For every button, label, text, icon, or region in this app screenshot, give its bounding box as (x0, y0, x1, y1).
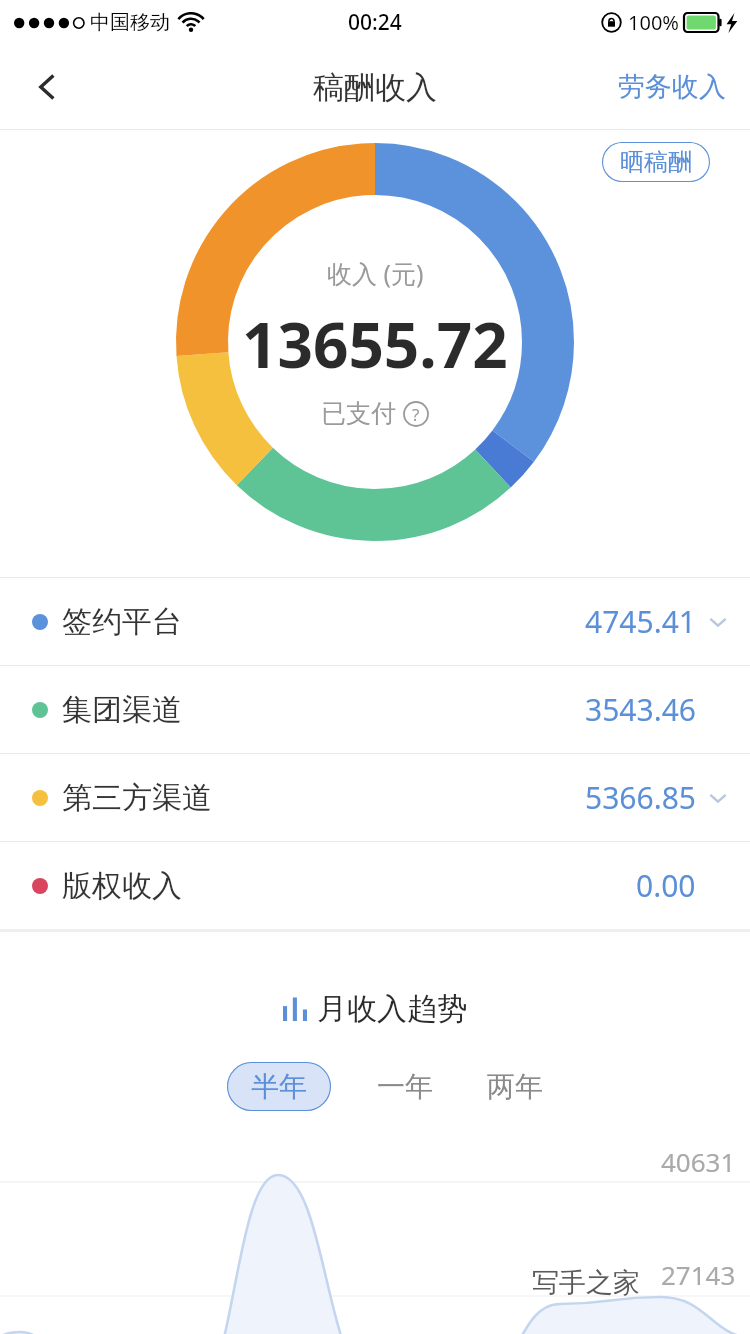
button[interactable]: 第三方渠道 (0, 754, 750, 841)
staticText: 已支付 (321, 398, 396, 429)
button[interactable]: 一年 (369, 1060, 441, 1113)
staticText: ? (412, 403, 420, 426)
staticText: 00:24 (348, 8, 402, 37)
staticText: 一年 (377, 1069, 433, 1104)
staticText: 半年 (251, 1069, 307, 1104)
button[interactable]: 两年 (479, 1060, 551, 1113)
staticText: 中国移动 (90, 10, 170, 35)
staticText: 两年 (487, 1069, 543, 1104)
staticText: 版权收入 (62, 867, 182, 905)
button[interactable]: 晒稿酬 (602, 142, 710, 182)
staticText: 第三方渠道 (62, 779, 212, 817)
staticText: 劳务收入 (618, 70, 726, 104)
staticText: 3543.46 (585, 689, 696, 730)
staticText: 13655.72 (242, 302, 508, 386)
button[interactable]: Help (403, 401, 429, 427)
staticText: 集团渠道 (62, 691, 182, 729)
staticText: 稿酬收入 (313, 68, 437, 107)
button[interactable]: Back (20, 59, 76, 115)
staticText: 100% (628, 9, 679, 36)
staticText: 40631 (661, 1144, 736, 1179)
staticText: 月收入趋势 (317, 990, 467, 1028)
staticText: 写手之家 (532, 1266, 640, 1300)
button[interactable]: 集团渠道 (0, 666, 750, 753)
staticText: 晒稿酬 (620, 147, 692, 177)
button[interactable]: 劳务收入 (610, 60, 734, 114)
staticText: 5366.85 (585, 777, 696, 818)
button[interactable]: 版权收入 (0, 842, 750, 929)
staticText: 收入 (元) (327, 256, 424, 290)
staticText: 4745.41 (585, 601, 696, 642)
button[interactable]: 半年 (227, 1062, 331, 1111)
staticText: 签约平台 (62, 603, 182, 641)
button[interactable]: 签约平台 (0, 578, 750, 665)
staticText: 27143 (661, 1257, 736, 1292)
staticText: 0.00 (636, 865, 696, 906)
